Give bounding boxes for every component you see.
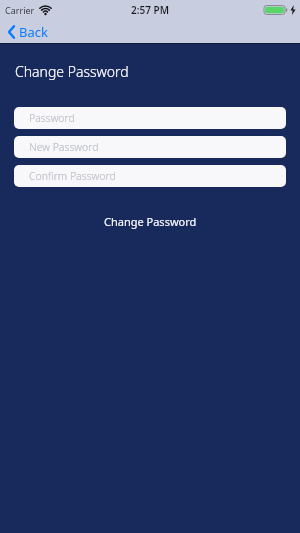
staticText: Confirm Password xyxy=(29,169,116,183)
staticText: Back xyxy=(19,23,48,41)
staticText: 2:57 PM xyxy=(131,3,169,17)
staticText: New Password xyxy=(29,140,99,154)
button[interactable]: Change Password xyxy=(96,212,205,231)
button[interactable]: Back xyxy=(0,21,54,43)
button[interactable]: Confirm Password xyxy=(14,165,286,187)
staticText: Change Password xyxy=(104,214,197,229)
staticText: Password xyxy=(29,111,75,125)
button[interactable]: Password xyxy=(14,107,286,129)
staticText: Change Password xyxy=(15,62,129,81)
button[interactable]: New Password xyxy=(14,136,286,158)
staticText: Carrier xyxy=(5,4,35,16)
